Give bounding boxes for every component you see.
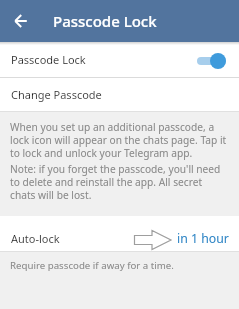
staticText: Auto-lock xyxy=(11,231,60,246)
staticText: Change Passcode xyxy=(11,87,102,102)
staticText: Note: if you forget the passcode, you'll… xyxy=(10,162,221,202)
staticText: Require passcode if away for a time. xyxy=(10,259,174,272)
staticText: Passcode Lock xyxy=(53,11,157,31)
staticText: When you set up an additional passcode, … xyxy=(10,120,227,160)
staticText: Passcode Lock xyxy=(11,52,86,67)
button[interactable] xyxy=(12,11,32,31)
staticText: in 1 hour xyxy=(177,230,229,247)
button[interactable]: Change Passcode xyxy=(0,78,239,111)
button[interactable]: Auto-lock xyxy=(0,216,239,251)
button[interactable]: Passcode Lock xyxy=(0,42,239,77)
